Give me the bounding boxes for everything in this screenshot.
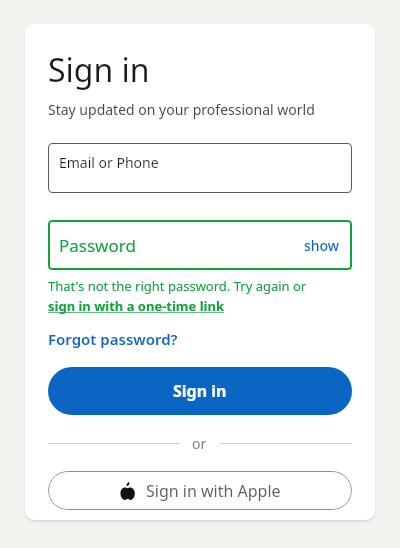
staticText: Stay updated on your professional world	[48, 100, 315, 119]
button[interactable]: Password	[48, 220, 352, 270]
button[interactable]: Email or Phone	[48, 143, 352, 193]
staticText: or	[192, 434, 207, 453]
staticText: Sign in with Apple	[146, 480, 281, 502]
button[interactable]: show	[292, 226, 352, 265]
staticText: show	[304, 236, 340, 255]
staticText: Sign in	[173, 380, 227, 402]
button[interactable]: sign in with a one-time link	[48, 297, 224, 315]
staticText: sign in with a one-time link	[48, 297, 224, 315]
staticText: Sign in	[48, 48, 150, 92]
button[interactable]: Apple logo	[48, 471, 352, 510]
staticText: Forgot password?	[48, 329, 178, 349]
button[interactable]: Sign in	[48, 367, 352, 415]
button[interactable]: Forgot password?	[48, 329, 178, 349]
staticText: Password	[59, 234, 136, 257]
other: Apple logo	[120, 482, 135, 500]
staticText: That's not the right password. Try again…	[48, 277, 307, 295]
staticText: Email or Phone	[59, 153, 159, 172]
